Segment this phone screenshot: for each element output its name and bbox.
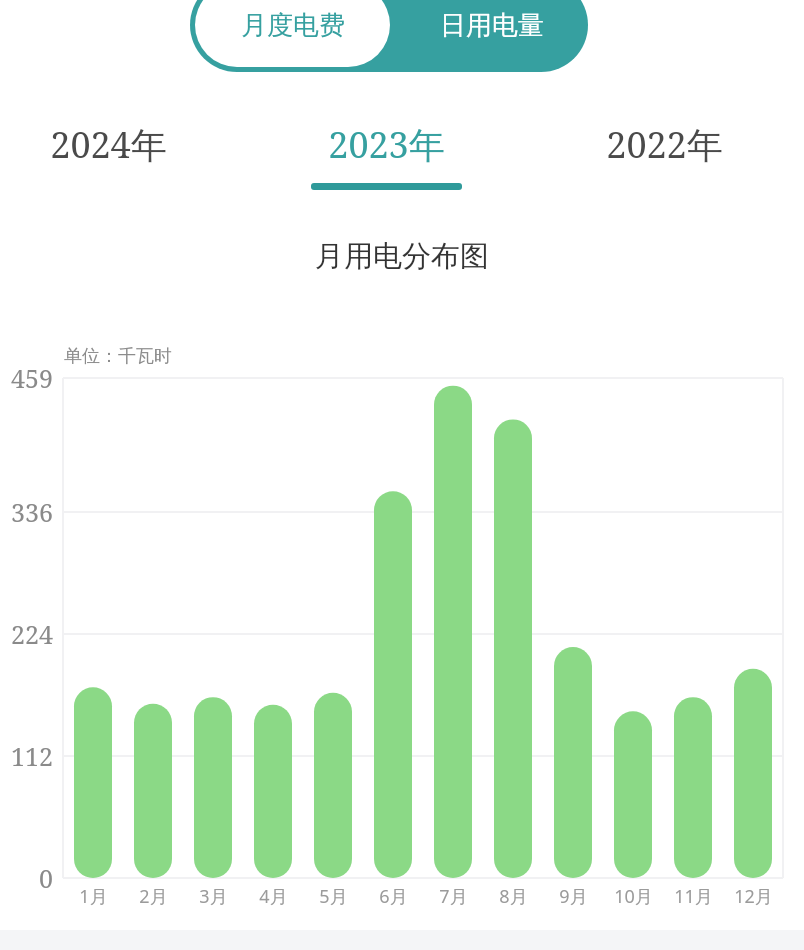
staticText: 10月 [614, 884, 653, 909]
staticText: 11月 [674, 884, 713, 909]
staticText: 2月 [139, 884, 168, 909]
staticText: 459 [11, 361, 53, 395]
button[interactable]: 月度电费 [195, 0, 390, 67]
staticText: 5月 [319, 884, 348, 909]
button[interactable]: 2022年 [564, 120, 764, 212]
staticText: 4月 [259, 884, 288, 909]
staticText: 9月 [559, 884, 588, 909]
staticText: 1月 [79, 884, 108, 909]
staticText: 2024年 [50, 120, 167, 169]
staticText: 3月 [199, 884, 228, 909]
button[interactable]: 2024年 [8, 120, 208, 212]
staticText: 6月 [379, 884, 408, 909]
staticText: 224 [11, 617, 53, 651]
button[interactable]: 日用电量 [400, 0, 583, 67]
staticText: 336 [11, 495, 53, 529]
staticText: 2023年 [328, 120, 445, 169]
staticText: 日用电量 [440, 9, 544, 42]
staticText: 7月 [439, 884, 468, 909]
staticText: 月用电分布图 [315, 238, 489, 275]
staticText: 0 [39, 861, 53, 895]
staticText: 2022年 [606, 120, 723, 169]
staticText: 12月 [734, 884, 773, 909]
staticText: 月度电费 [241, 9, 345, 42]
button[interactable]: 2023年 [286, 120, 486, 212]
staticText: 8月 [499, 884, 528, 909]
staticText: 单位：千瓦时 [64, 345, 172, 368]
staticText: 112 [11, 739, 53, 773]
